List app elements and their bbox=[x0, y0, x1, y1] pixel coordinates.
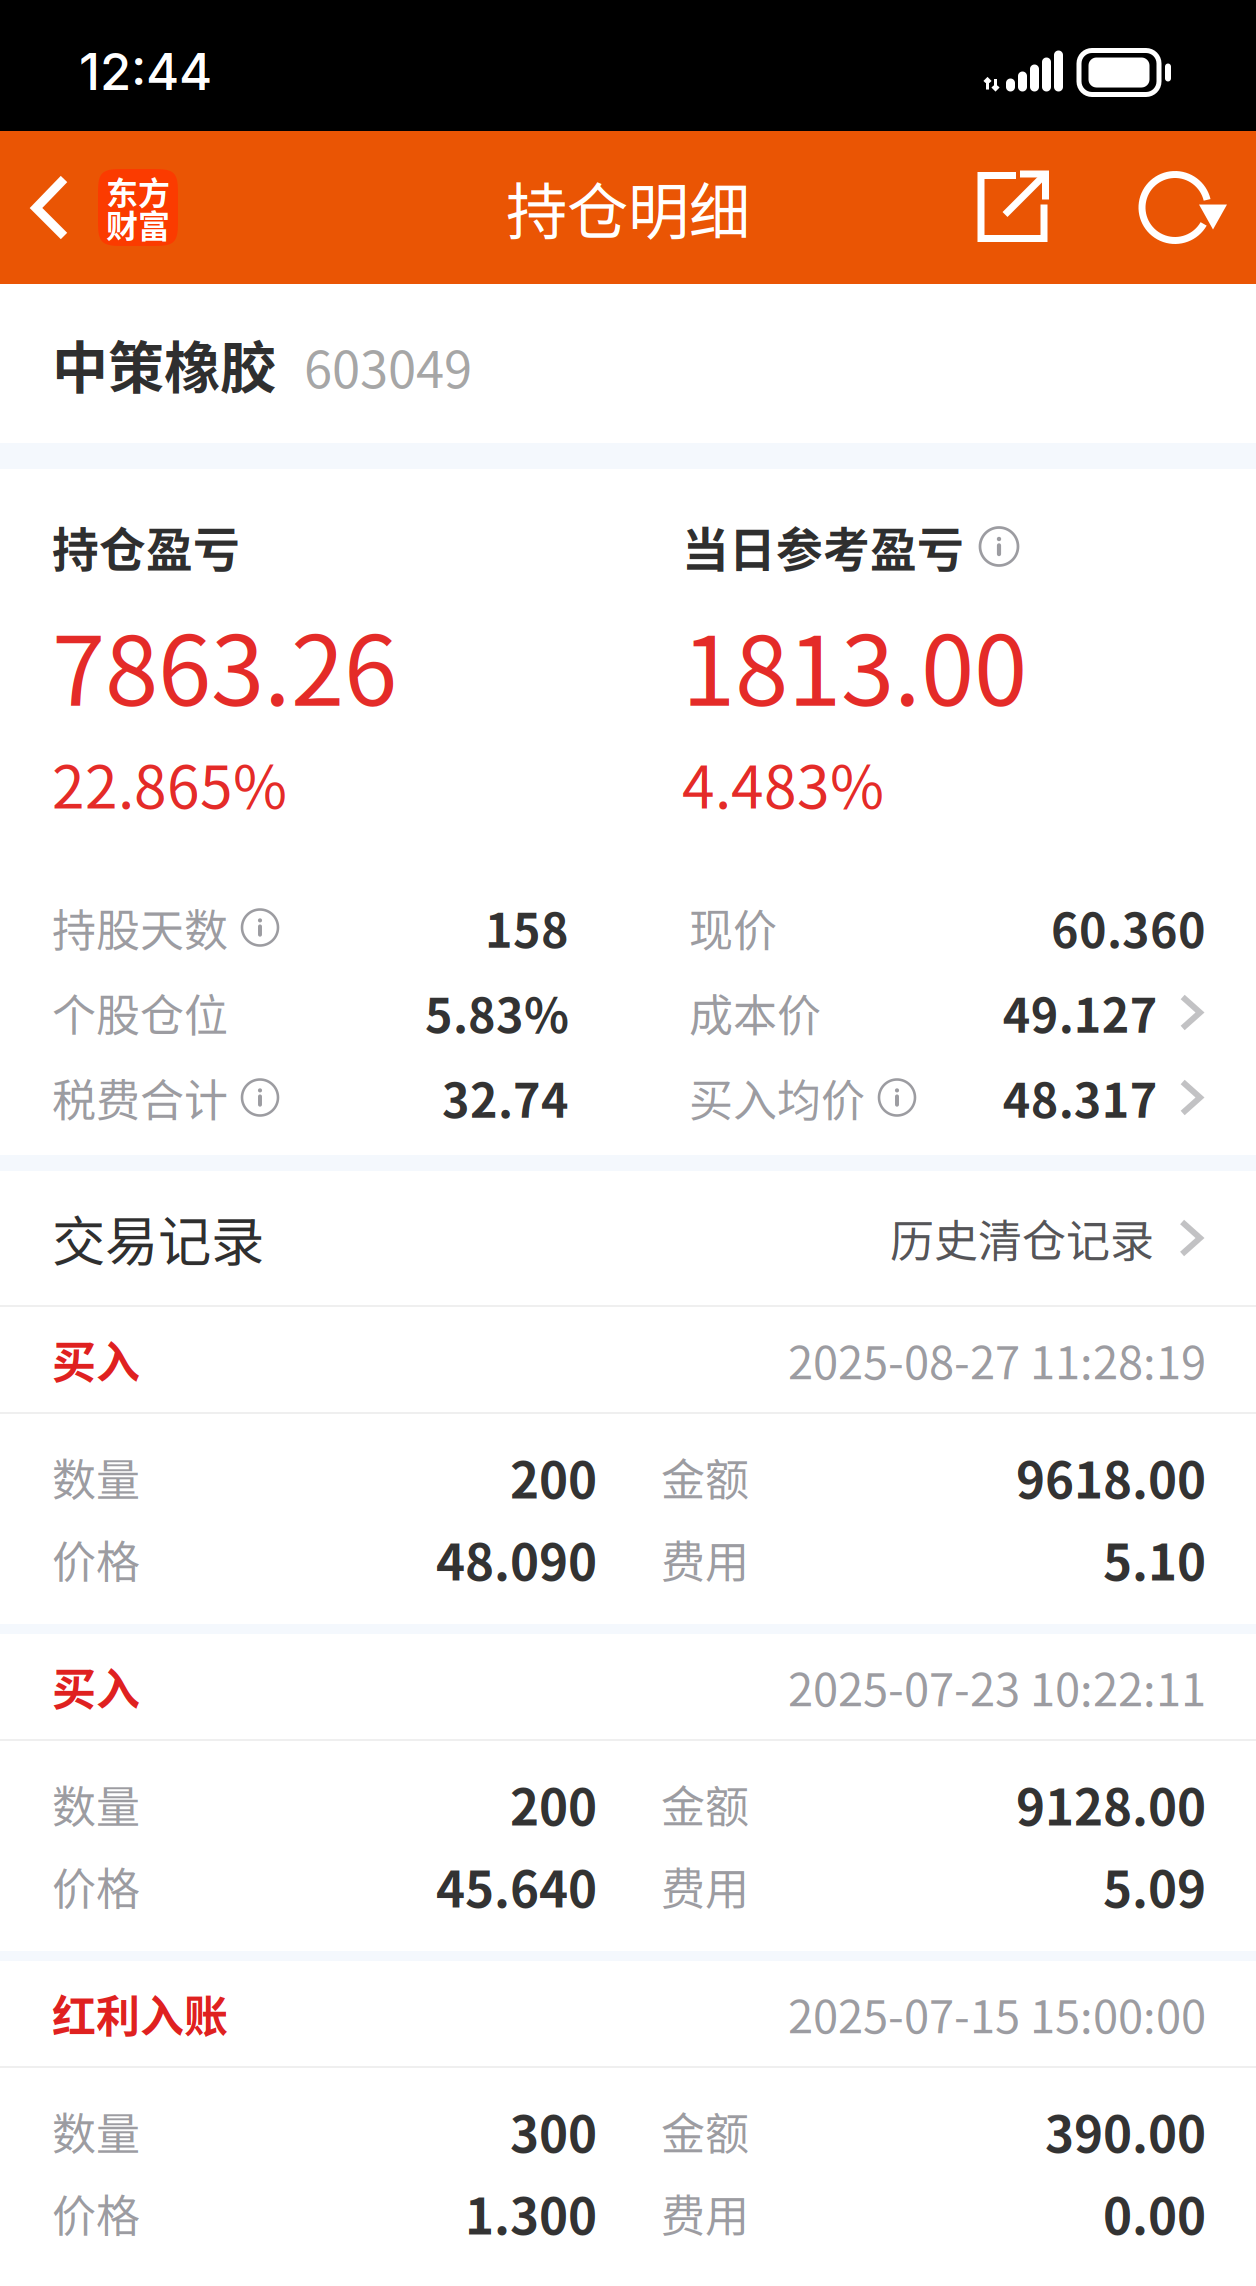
staticText: 1813.00 bbox=[682, 594, 1027, 733]
staticText: 2025-08-27 11:28:19 bbox=[788, 1327, 1206, 1392]
staticText: 持仓明细 bbox=[506, 163, 750, 252]
button[interactable]: Back bbox=[0, 131, 198, 284]
staticText: 买入均价 bbox=[689, 1066, 865, 1129]
staticText: 5.83% bbox=[425, 979, 569, 1046]
staticText: 300 bbox=[510, 2095, 597, 2167]
staticText: 数量 bbox=[52, 2099, 140, 2163]
staticText: 60.360 bbox=[1051, 894, 1206, 961]
staticText: 48.090 bbox=[436, 1523, 597, 1595]
staticText: 持股天数 bbox=[52, 896, 228, 959]
staticText: 红利入账 bbox=[52, 1982, 228, 2045]
staticText: 金额 bbox=[661, 1772, 749, 1836]
staticText: 数量 bbox=[52, 1445, 140, 1509]
button[interactable]: Refresh bbox=[1127, 131, 1240, 284]
staticText: 9128.00 bbox=[1016, 1768, 1206, 1840]
staticText: 买入 bbox=[52, 1655, 140, 1718]
staticText: 603049 bbox=[304, 329, 472, 402]
staticText: 中策橡胶 bbox=[52, 323, 276, 404]
staticText: 交易记录 bbox=[52, 1199, 264, 1277]
staticText: 5.10 bbox=[1103, 1523, 1206, 1595]
button[interactable]: Share bbox=[899, 131, 1127, 284]
staticText: 成本价 bbox=[689, 981, 821, 1044]
staticText: 财富 bbox=[106, 201, 170, 247]
staticText: 5.09 bbox=[1103, 1850, 1206, 1922]
staticText: 200 bbox=[510, 1441, 597, 1513]
staticText: 数量 bbox=[52, 1772, 140, 1836]
staticText: 49.127 bbox=[1003, 979, 1158, 1046]
staticText: 200 bbox=[510, 1768, 597, 1840]
staticText: 税费合计 bbox=[52, 1066, 228, 1129]
staticText: 持仓盈亏 bbox=[52, 513, 240, 580]
staticText: 390.00 bbox=[1045, 2095, 1206, 2167]
staticText: 费用 bbox=[661, 1854, 749, 1918]
staticText: 0.00 bbox=[1103, 2177, 1206, 2249]
staticText: 1.300 bbox=[465, 2177, 597, 2249]
staticText: 2025-07-23 10:22:11 bbox=[788, 1654, 1206, 1719]
staticText: 个股仓位 bbox=[52, 981, 228, 1044]
staticText: 金额 bbox=[661, 2099, 749, 2163]
staticText: 东方 bbox=[106, 168, 170, 214]
staticText: 4.483% bbox=[682, 740, 884, 825]
staticText: 费用 bbox=[661, 2181, 749, 2245]
button[interactable]: 历史清仓记录 bbox=[890, 1206, 1206, 1270]
staticText: 2025-07-15 15:00:00 bbox=[788, 1981, 1206, 2046]
staticText: 48.317 bbox=[1003, 1064, 1158, 1131]
staticText: 价格 bbox=[52, 1854, 140, 1918]
staticText: 32.74 bbox=[442, 1064, 569, 1131]
staticText: 12:44 bbox=[79, 41, 212, 102]
staticText: 买入 bbox=[52, 1328, 140, 1391]
staticText: 45.640 bbox=[436, 1850, 597, 1922]
staticText: 当日参考盈亏 bbox=[682, 513, 964, 580]
staticText: 价格 bbox=[52, 1527, 140, 1591]
staticText: 9618.00 bbox=[1016, 1441, 1206, 1513]
staticText: 158 bbox=[485, 894, 569, 961]
staticText: 7863.26 bbox=[52, 594, 397, 733]
staticText: 22.865% bbox=[52, 740, 287, 825]
staticText: 现价 bbox=[689, 896, 777, 959]
staticText: 费用 bbox=[661, 1527, 749, 1591]
staticText: 历史清仓记录 bbox=[890, 1206, 1154, 1270]
staticText: 金额 bbox=[661, 1445, 749, 1509]
staticText: 价格 bbox=[52, 2181, 140, 2245]
